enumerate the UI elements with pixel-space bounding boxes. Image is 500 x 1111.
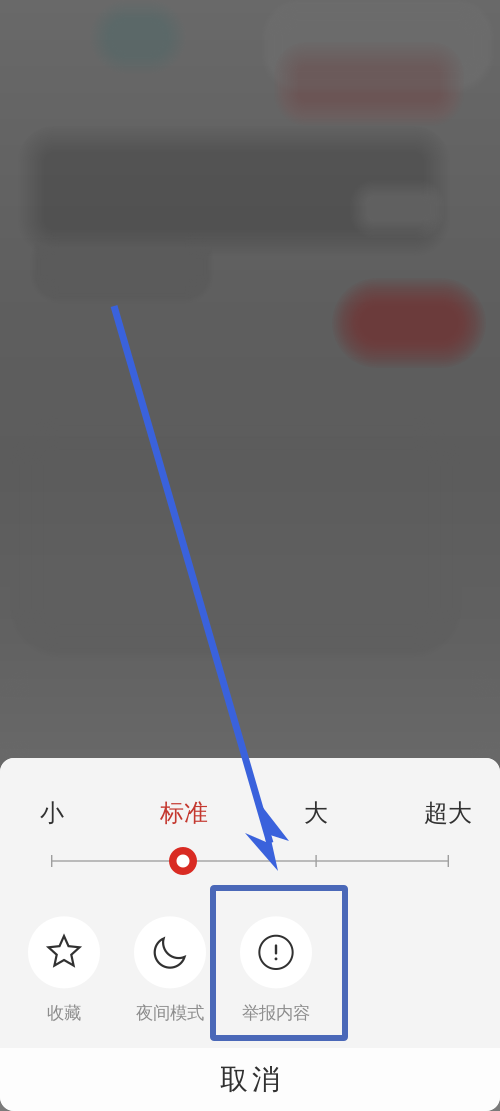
staticText: 取消 — [220, 1062, 280, 1097]
button[interactable]: 标准 — [118, 796, 250, 830]
button[interactable]: 收藏 — [11, 907, 117, 1033]
button[interactable]: 夜间模式 — [117, 907, 223, 1033]
button[interactable]: 超大 — [382, 796, 500, 830]
button[interactable]: 举报内容 — [223, 907, 329, 1033]
button[interactable]: 取消 — [0, 1048, 500, 1111]
staticText: 小 — [40, 798, 64, 828]
staticText: 夜间模式 — [136, 1002, 204, 1024]
button[interactable]: 小 — [0, 796, 118, 830]
staticText: 收藏 — [47, 1002, 81, 1024]
staticText: 超大 — [424, 798, 472, 828]
button[interactable]: 大 — [250, 796, 382, 830]
staticText: 标准 — [160, 798, 208, 828]
staticText: 举报内容 — [242, 1002, 310, 1024]
staticText: 大 — [304, 798, 328, 828]
